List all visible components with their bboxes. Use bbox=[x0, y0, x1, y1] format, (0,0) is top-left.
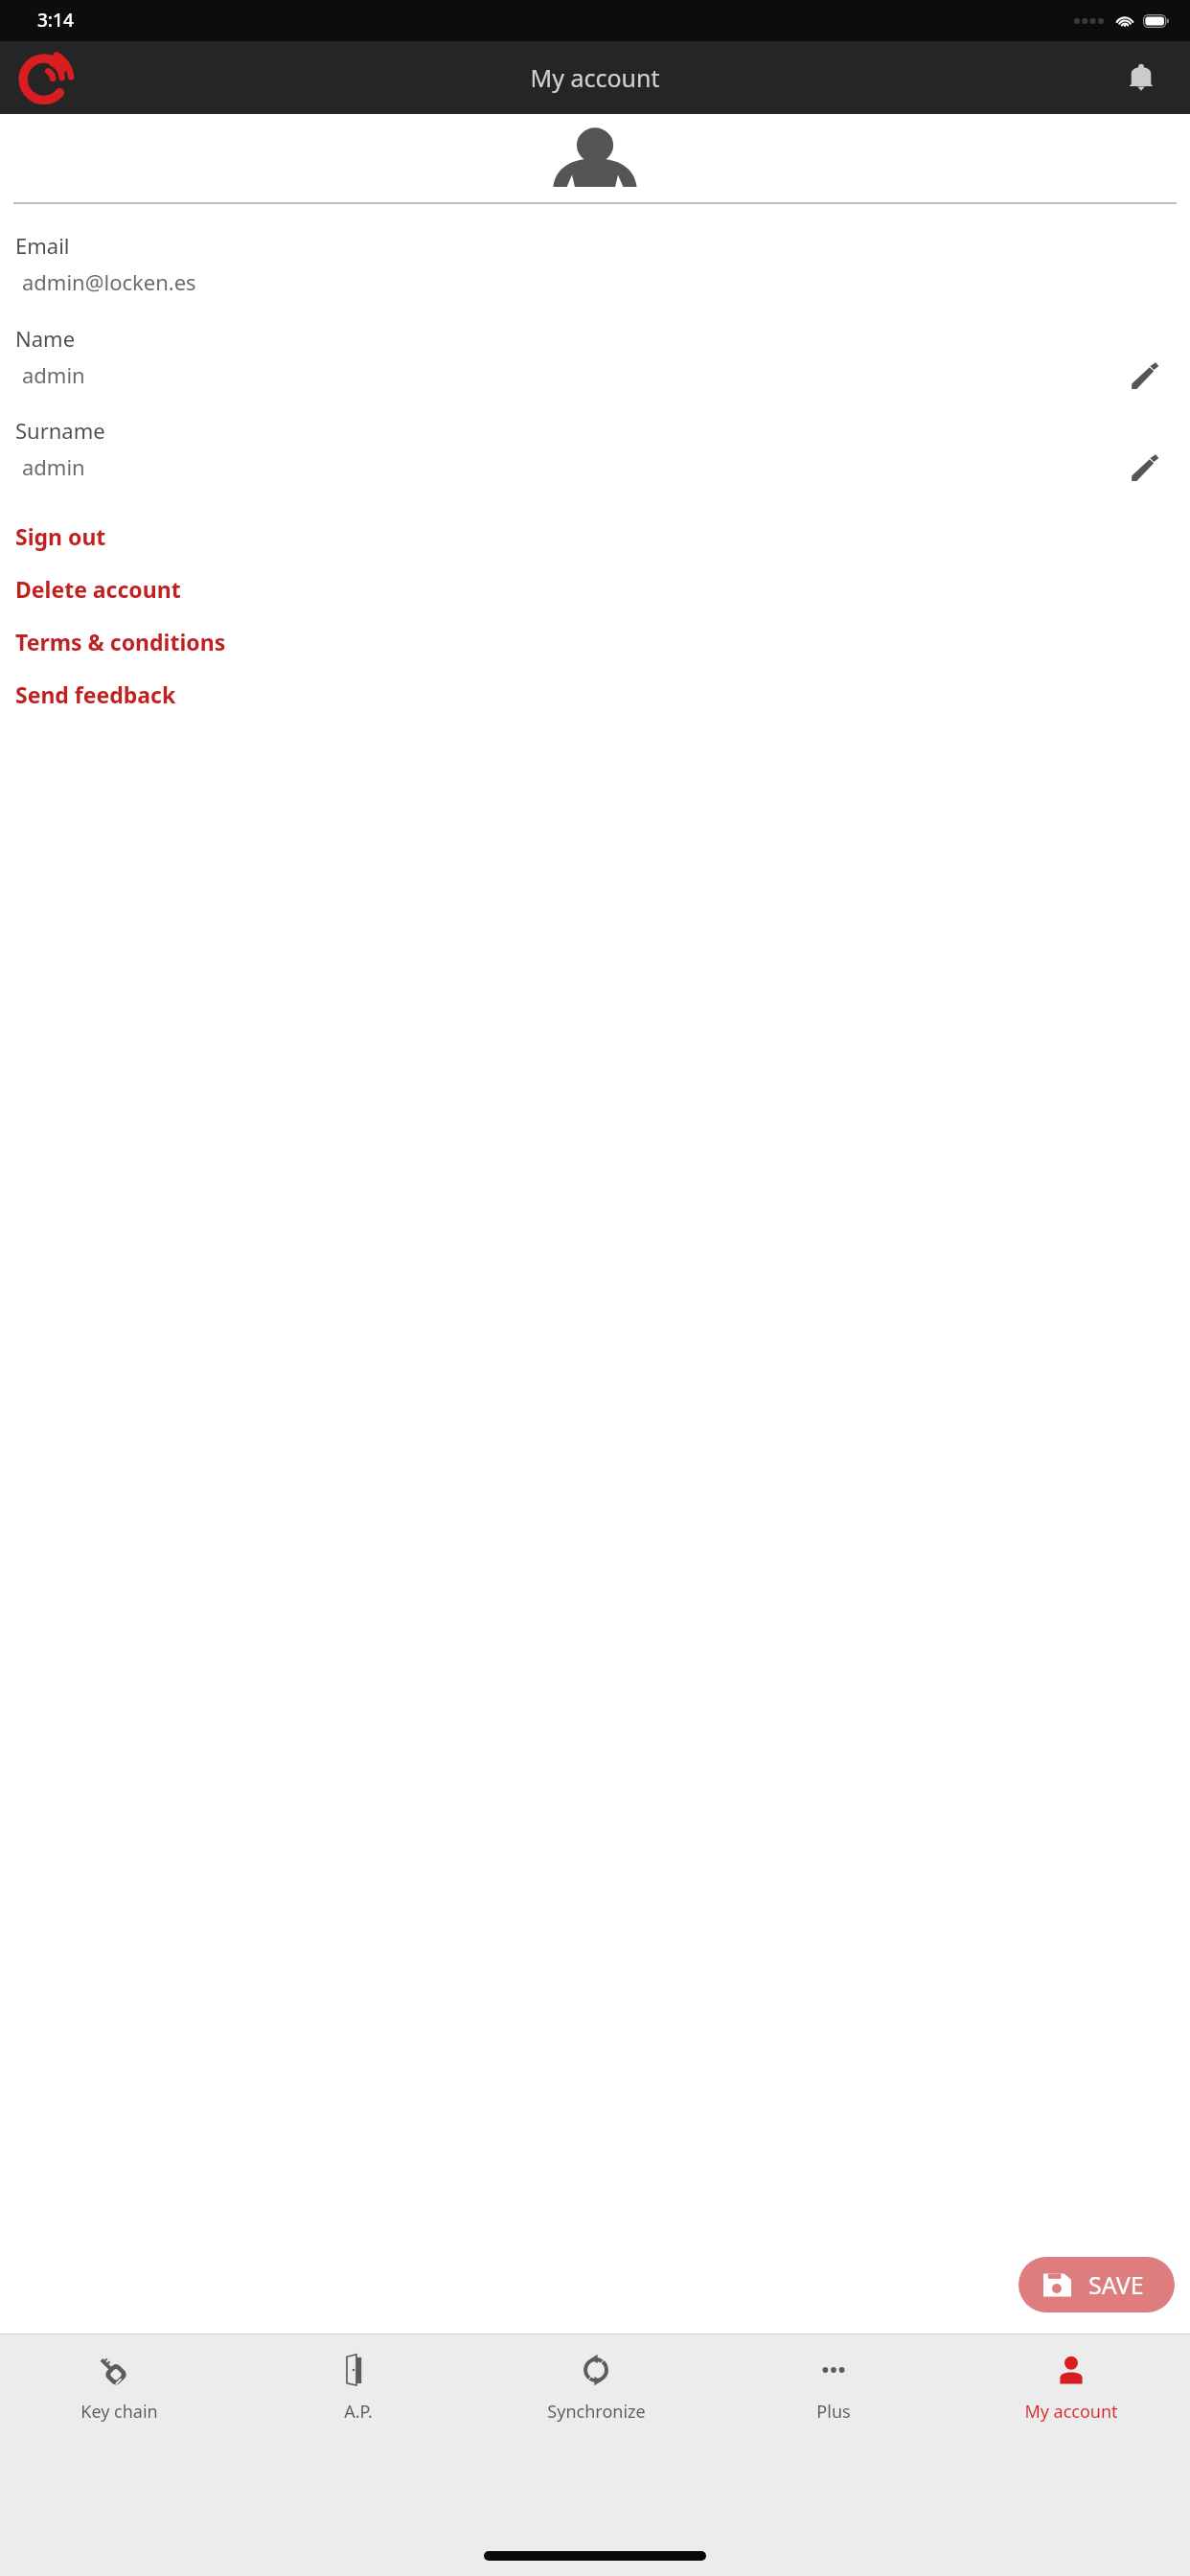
staticText: Delete account bbox=[15, 574, 181, 604]
staticText: My account bbox=[1024, 2400, 1118, 2424]
other: Edit bbox=[1123, 446, 1165, 488]
staticText: Sign out bbox=[15, 521, 106, 551]
staticText: 3:14 bbox=[37, 8, 74, 33]
staticText: My account bbox=[530, 61, 660, 94]
staticText: Name bbox=[15, 324, 76, 353]
staticText: SAVE bbox=[1088, 2268, 1144, 2301]
button[interactable]: Delete account bbox=[0, 567, 1190, 609]
staticText: admin bbox=[22, 360, 85, 389]
button[interactable]: Send feedback bbox=[0, 673, 1190, 715]
staticText: Terms & conditions bbox=[15, 627, 226, 656]
staticText: Plus bbox=[816, 2400, 851, 2424]
staticText: Send feedback bbox=[15, 679, 176, 709]
staticText: A.P. bbox=[344, 2400, 373, 2424]
staticText: Surname bbox=[15, 416, 105, 445]
button[interactable]: Synchronize bbox=[477, 2334, 715, 2424]
other: Edit bbox=[1123, 354, 1165, 396]
button[interactable]: Key chain bbox=[0, 2334, 239, 2424]
staticText: Email bbox=[15, 231, 70, 260]
staticText: admin@locken.es bbox=[22, 267, 196, 296]
button[interactable]: Notifications bbox=[1113, 50, 1169, 105]
button[interactable]: SAVE bbox=[1018, 2257, 1175, 2312]
staticText: Synchronize bbox=[547, 2400, 646, 2424]
button[interactable]: Sign out bbox=[0, 515, 1190, 557]
button[interactable]: A.P. bbox=[239, 2334, 477, 2424]
button[interactable]: admin bbox=[0, 445, 1190, 489]
staticText: Key chain bbox=[80, 2400, 158, 2424]
button[interactable]: Locken logo bbox=[16, 47, 78, 108]
button[interactable]: My account bbox=[952, 2334, 1190, 2424]
staticText: admin bbox=[22, 452, 85, 481]
button[interactable]: Terms & conditions bbox=[0, 620, 1190, 662]
button[interactable]: Plus bbox=[715, 2334, 952, 2424]
button[interactable]: admin bbox=[0, 353, 1190, 397]
